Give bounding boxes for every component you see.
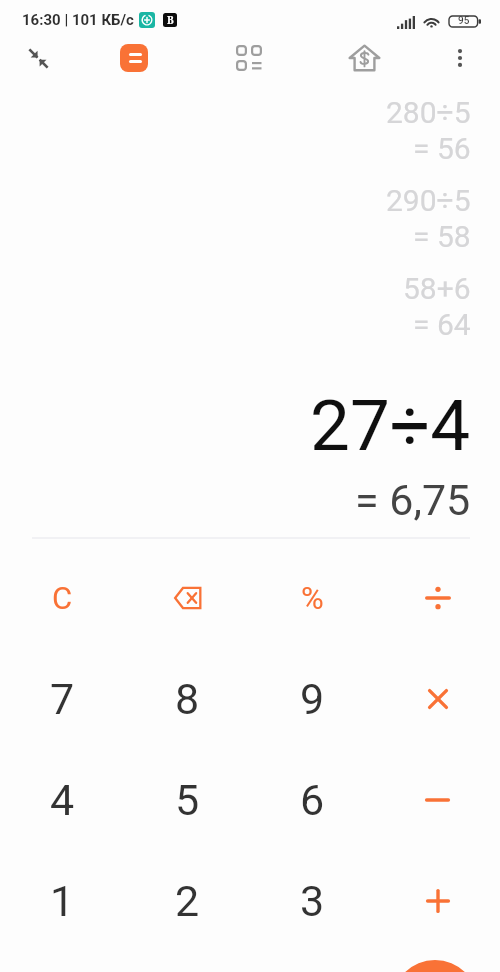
staticText: 27÷4 bbox=[310, 384, 471, 467]
button[interactable]: 6 bbox=[250, 749, 375, 850]
staticText: 95 bbox=[458, 15, 470, 27]
button[interactable]: 9 bbox=[250, 648, 375, 749]
staticText: 16:30 | 101 КБ/с bbox=[22, 11, 134, 29]
button[interactable]: 5 bbox=[125, 749, 250, 850]
button[interactable]: Unit converter bbox=[223, 32, 275, 84]
staticText: C bbox=[52, 580, 73, 616]
button[interactable]: Divide bbox=[375, 547, 500, 648]
staticText: B bbox=[167, 13, 174, 27]
staticText: = 64 bbox=[413, 307, 471, 342]
staticText: 6 bbox=[300, 775, 325, 825]
button[interactable]: More options bbox=[434, 32, 486, 84]
button[interactable]: Backspace bbox=[125, 547, 250, 648]
button[interactable]: Collapse bbox=[12, 32, 64, 84]
staticText: 58+6 bbox=[403, 271, 471, 306]
button[interactable]: Multiply bbox=[375, 648, 500, 749]
staticText: = 56 bbox=[413, 131, 471, 166]
button[interactable]: % bbox=[250, 547, 375, 648]
button[interactable]: Mortgage calculator bbox=[338, 32, 390, 84]
staticText: 2 bbox=[175, 876, 200, 926]
button[interactable]: 1 bbox=[0, 850, 125, 951]
button[interactable]: 2 bbox=[125, 850, 250, 951]
button[interactable]: 8 bbox=[125, 648, 250, 749]
staticText: = 58 bbox=[413, 219, 471, 254]
staticText: 280÷5 bbox=[386, 95, 471, 130]
button[interactable]: Plus bbox=[375, 850, 500, 951]
staticText: 3 bbox=[300, 876, 325, 926]
staticText: = 6,75 bbox=[355, 475, 471, 525]
button[interactable]: Minus bbox=[375, 749, 500, 850]
button[interactable]: Calculator bbox=[108, 32, 160, 84]
staticText: 290÷5 bbox=[386, 183, 471, 218]
staticText: 4 bbox=[50, 775, 75, 825]
button[interactable]: 3 bbox=[250, 850, 375, 951]
button[interactable]: 4 bbox=[0, 749, 125, 850]
staticText: 9 bbox=[300, 674, 325, 724]
staticText: 5 bbox=[175, 775, 200, 825]
staticText: 8 bbox=[175, 674, 200, 724]
staticText: % bbox=[301, 580, 324, 616]
staticText: 7 bbox=[50, 674, 75, 724]
staticText: 1 bbox=[50, 876, 75, 926]
button[interactable]: C bbox=[0, 547, 125, 648]
button[interactable]: 7 bbox=[0, 648, 125, 749]
button[interactable]: Equals bbox=[392, 960, 478, 972]
